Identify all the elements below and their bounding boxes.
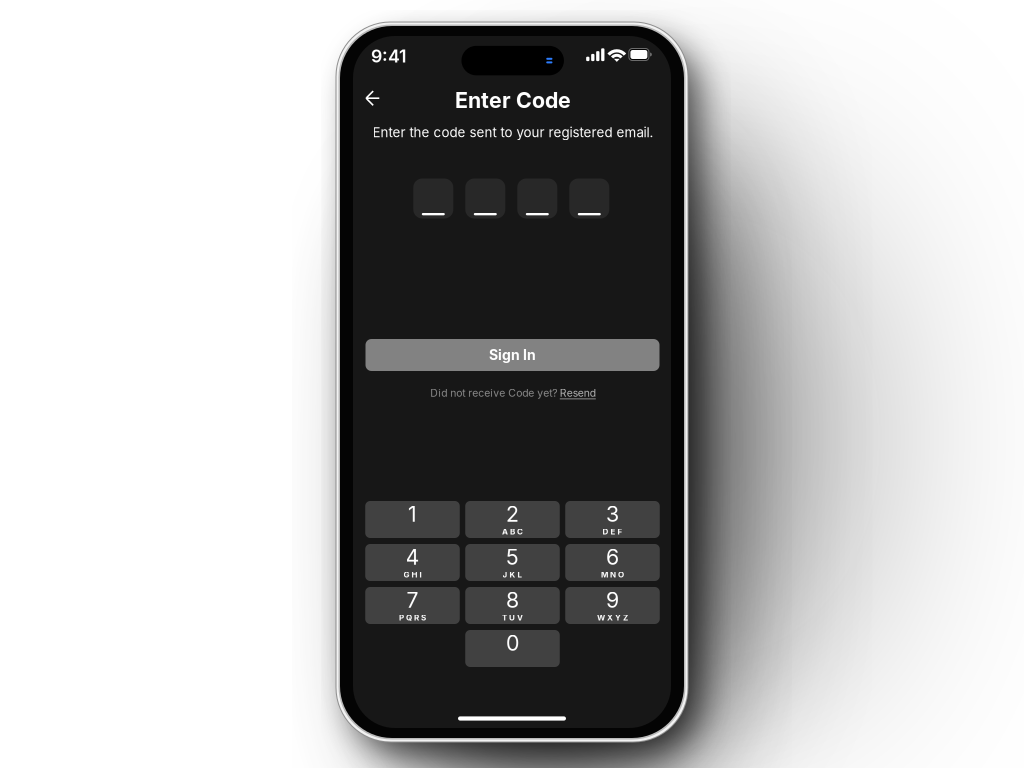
staticText: Sign In	[489, 346, 536, 363]
staticText: Enter the code sent to your registered e…	[372, 124, 653, 140]
staticText: A B C	[502, 527, 523, 536]
button[interactable]: Resend	[560, 387, 596, 399]
staticText: 6	[606, 544, 619, 570]
button[interactable]: 2	[465, 501, 560, 538]
button[interactable]: Back	[355, 81, 389, 115]
staticText: 1	[408, 501, 417, 527]
button[interactable]: 6	[565, 544, 660, 581]
staticText: 4	[405, 544, 419, 570]
staticText: Resend	[560, 387, 596, 399]
staticText: Did not receive Code yet?	[430, 387, 557, 399]
button[interactable]: 4	[365, 544, 460, 581]
staticText: 7	[406, 587, 418, 613]
staticText: 2	[506, 501, 519, 527]
staticText: J K L	[502, 570, 522, 579]
button[interactable]: Code digit	[413, 178, 453, 218]
staticText: D E F	[602, 527, 622, 536]
button[interactable]: 5	[465, 544, 560, 581]
staticText: 9	[606, 587, 619, 613]
staticText: P Q R S	[399, 613, 426, 622]
button[interactable]: 8	[465, 587, 560, 624]
button[interactable]: Code digit	[569, 178, 609, 218]
button[interactable]: 1	[365, 501, 460, 538]
staticText: M N O	[601, 570, 624, 579]
button[interactable]: 9	[565, 587, 660, 624]
staticText: G H I	[403, 570, 421, 579]
staticText: W X Y Z	[597, 613, 628, 622]
button[interactable]: 0	[465, 630, 560, 667]
staticText: T U V	[502, 613, 523, 622]
staticText: 0	[506, 630, 519, 656]
button[interactable]: Sign In	[365, 339, 659, 371]
staticText: 8	[506, 587, 519, 613]
button[interactable]: Code digit	[517, 178, 557, 218]
staticText: 3	[606, 501, 619, 527]
staticText: 5	[506, 544, 519, 570]
button[interactable]: 7	[365, 587, 460, 624]
staticText: 9:41	[371, 45, 406, 67]
button[interactable]: 3	[565, 501, 660, 538]
button[interactable]: Code digit	[465, 178, 505, 218]
staticText: Enter Code	[455, 87, 571, 113]
